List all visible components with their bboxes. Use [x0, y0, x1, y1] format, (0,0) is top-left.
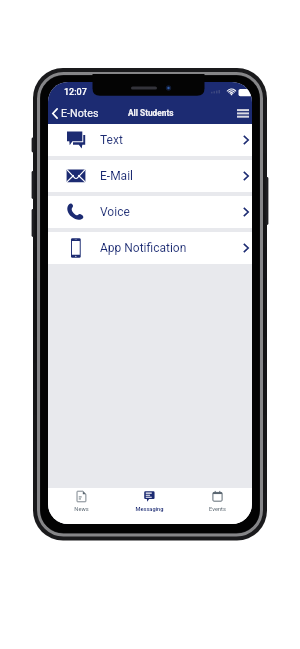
- staticText: App Notification: [100, 241, 187, 255]
- staticText: All Students: [128, 108, 174, 118]
- staticText: Voice: [100, 205, 130, 219]
- staticText: 12:07: [64, 87, 87, 98]
- staticText: Events: [209, 506, 226, 513]
- button[interactable]: E-Mail: [48, 160, 252, 192]
- staticText: E-Mail: [100, 169, 133, 183]
- button[interactable]: News: [48, 488, 116, 524]
- staticText: E-Notes: [61, 107, 99, 120]
- staticText: Messaging: [135, 506, 164, 513]
- button[interactable]: Voice: [48, 196, 252, 228]
- button[interactable]: Messaging: [116, 488, 184, 524]
- button[interactable]: Text: [48, 124, 252, 156]
- button[interactable]: Menu: [231, 102, 252, 124]
- staticText: News: [74, 506, 89, 513]
- staticText: Text: [100, 133, 123, 147]
- button[interactable]: E-Notes: [48, 102, 105, 124]
- button[interactable]: Events: [184, 488, 252, 524]
- button[interactable]: App Notification: [48, 232, 252, 264]
